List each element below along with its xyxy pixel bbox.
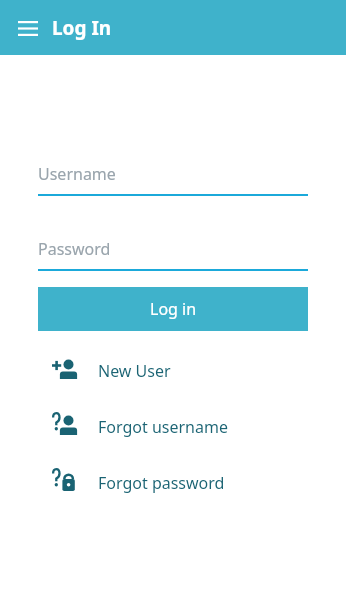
- button[interactable]: Open navigation menu: [10, 10, 46, 46]
- staticText: Password: [38, 238, 111, 260]
- staticText: Username: [38, 163, 116, 185]
- staticText: Forgot password: [98, 472, 225, 494]
- staticText: Log In: [52, 15, 112, 41]
- staticText: New User: [98, 360, 171, 382]
- button[interactable]: Forgot password: [0, 455, 346, 511]
- button[interactable]: Forgot username: [0, 399, 346, 455]
- staticText: Forgot username: [98, 416, 228, 438]
- button[interactable]: Password: [38, 238, 308, 271]
- button[interactable]: Username: [38, 163, 308, 196]
- staticText: Log in: [150, 298, 197, 320]
- button[interactable]: Log in: [38, 287, 308, 331]
- button[interactable]: New User: [0, 343, 346, 399]
